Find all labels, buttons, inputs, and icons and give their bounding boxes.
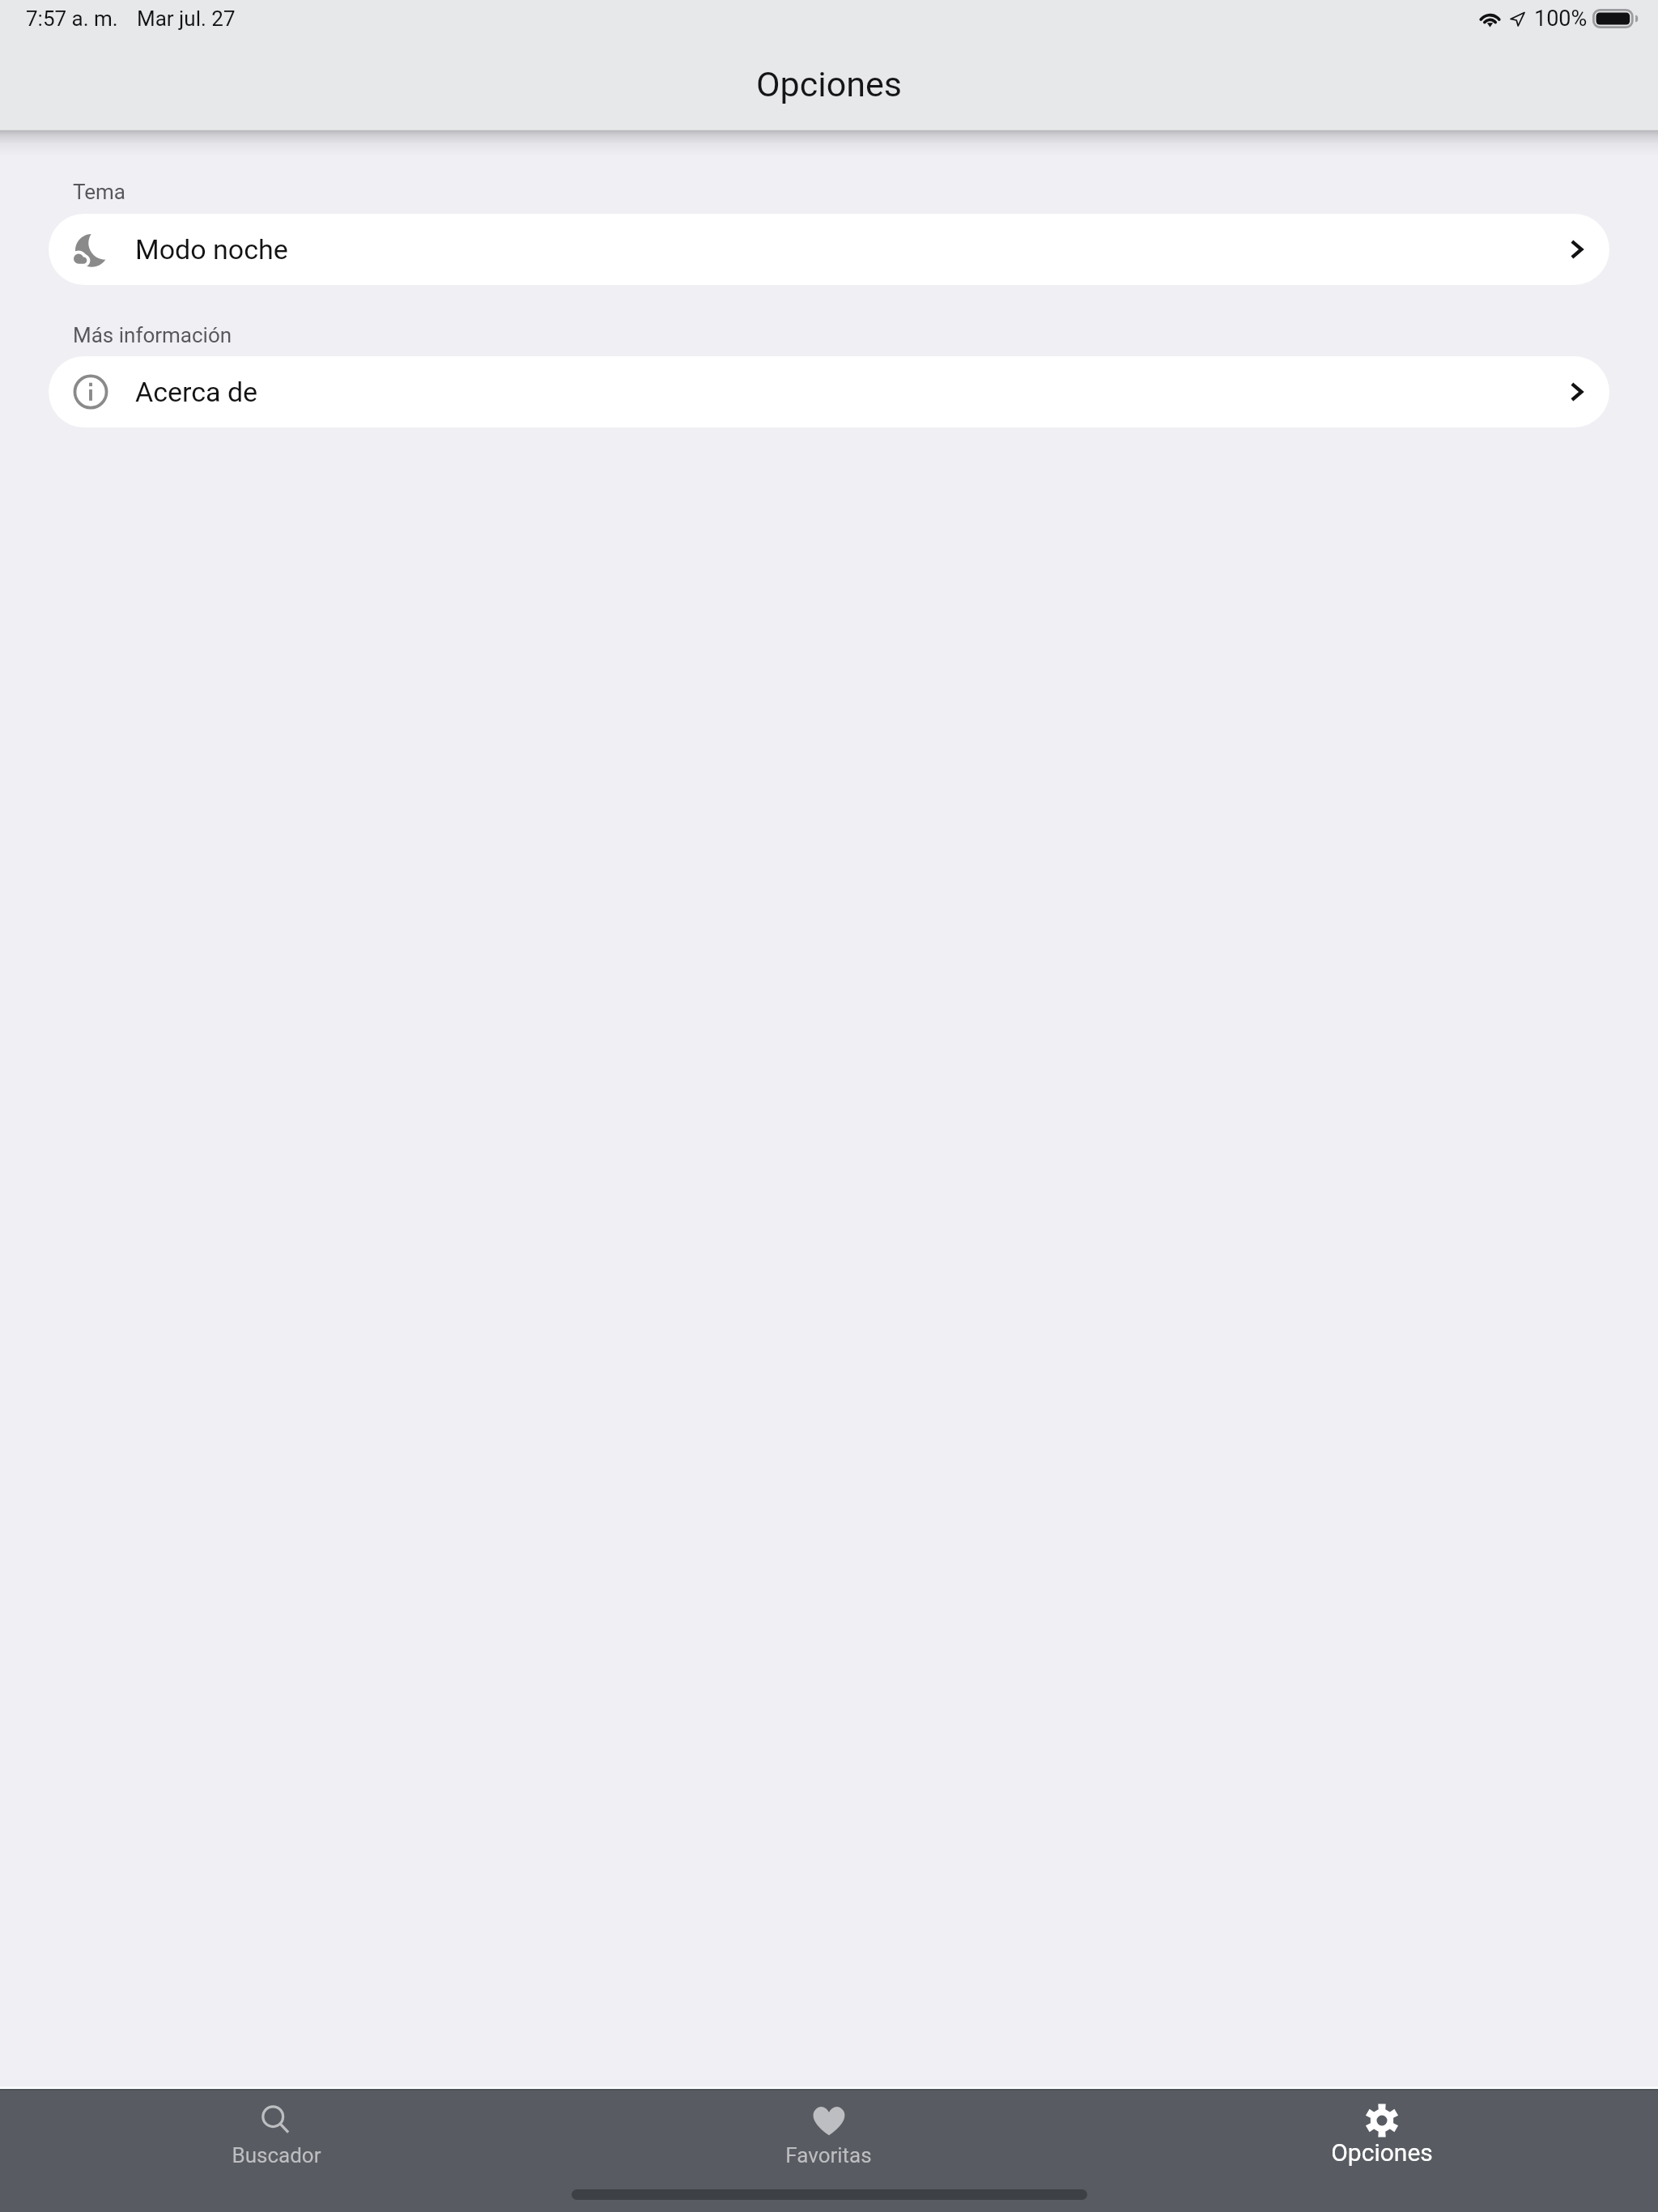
staticText: Más información <box>73 323 232 347</box>
staticText: Tema <box>73 180 125 204</box>
other: Batería <box>1592 9 1639 28</box>
button[interactable]: Acerca de <box>49 356 1609 428</box>
staticText: Modo noche <box>135 233 288 266</box>
other: Wi-Fi <box>1478 11 1502 28</box>
staticText: Mar jul. 27 <box>137 6 236 31</box>
button[interactable]: Buscador <box>0 2091 552 2183</box>
staticText: Favoritas <box>785 2143 872 2167</box>
other: Buscador <box>259 2104 293 2138</box>
staticText: Opciones <box>756 64 902 104</box>
other: Opciones <box>1365 2104 1399 2138</box>
button[interactable]: Favoritas <box>552 2091 1105 2183</box>
staticText: Acerca de <box>135 376 258 408</box>
staticText: Opciones <box>1331 2138 1433 2167</box>
button[interactable]: Opciones <box>1105 2091 1658 2183</box>
staticText: 100% <box>1534 6 1588 32</box>
staticText: Buscador <box>232 2143 321 2167</box>
button[interactable]: Modo noche <box>49 214 1609 285</box>
other: Favoritas <box>812 2104 846 2138</box>
staticText: 7:57 a. m. <box>26 6 118 31</box>
other: Ubicación <box>1509 11 1525 27</box>
